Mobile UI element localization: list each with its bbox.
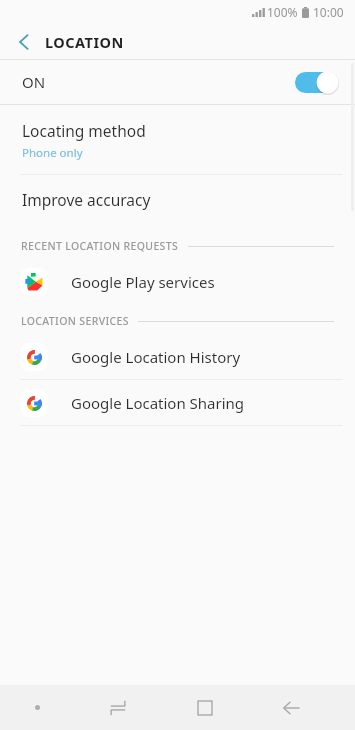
staticText: Google Location Sharing bbox=[71, 393, 245, 413]
button[interactable]: Navigate up bbox=[11, 29, 37, 55]
staticText: 100% bbox=[267, 4, 298, 20]
button[interactable]: Google Location Sharing bbox=[0, 380, 355, 425]
staticText: LOCATION SERVICES bbox=[21, 314, 129, 328]
staticText: 10:00 bbox=[313, 4, 344, 20]
button[interactable]: Recent apps bbox=[75, 685, 161, 730]
staticText: RECENT LOCATION REQUESTS bbox=[21, 239, 179, 253]
button[interactable]: Home bbox=[161, 685, 248, 730]
staticText: Improve accuracy bbox=[22, 189, 151, 210]
button[interactable]: Improve accuracy bbox=[0, 175, 355, 223]
staticText: Google Location History bbox=[71, 347, 241, 367]
button[interactable]: ON bbox=[0, 60, 355, 104]
button[interactable]: Google Location History bbox=[0, 334, 355, 379]
button[interactable]: Google Play services bbox=[0, 259, 355, 304]
staticText: Google Play services bbox=[71, 272, 215, 292]
staticText: Locating method bbox=[22, 120, 146, 141]
staticText: Phone only bbox=[22, 145, 83, 161]
button[interactable]: Back bbox=[248, 685, 335, 730]
button[interactable]: Location on bbox=[291, 68, 341, 96]
button[interactable]: Locating method bbox=[0, 105, 355, 174]
staticText: ON bbox=[22, 72, 46, 92]
staticText: LOCATION bbox=[45, 32, 124, 52]
